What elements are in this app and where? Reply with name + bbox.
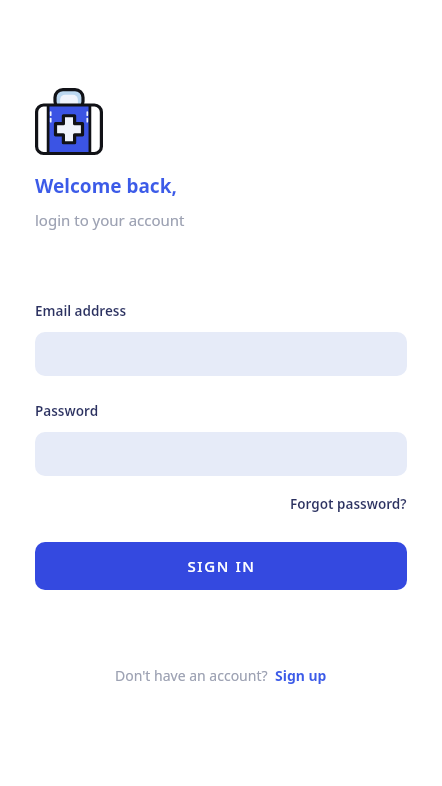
button[interactable]: Forgot password? [290,495,407,513]
staticText: Welcome back, [35,173,177,199]
other: First aid kit logo [35,88,103,155]
staticText: Email address [35,302,127,320]
staticText: Forgot password? [290,495,407,513]
staticText: Don't have an account? [115,666,268,685]
staticText: Sign up [275,666,327,685]
staticText: Password [35,402,99,420]
staticText: login to your account [35,210,185,230]
button[interactable]: SIGN IN [35,542,407,590]
staticText: SIGN IN [187,556,256,576]
button[interactable]: Sign up [275,666,327,685]
